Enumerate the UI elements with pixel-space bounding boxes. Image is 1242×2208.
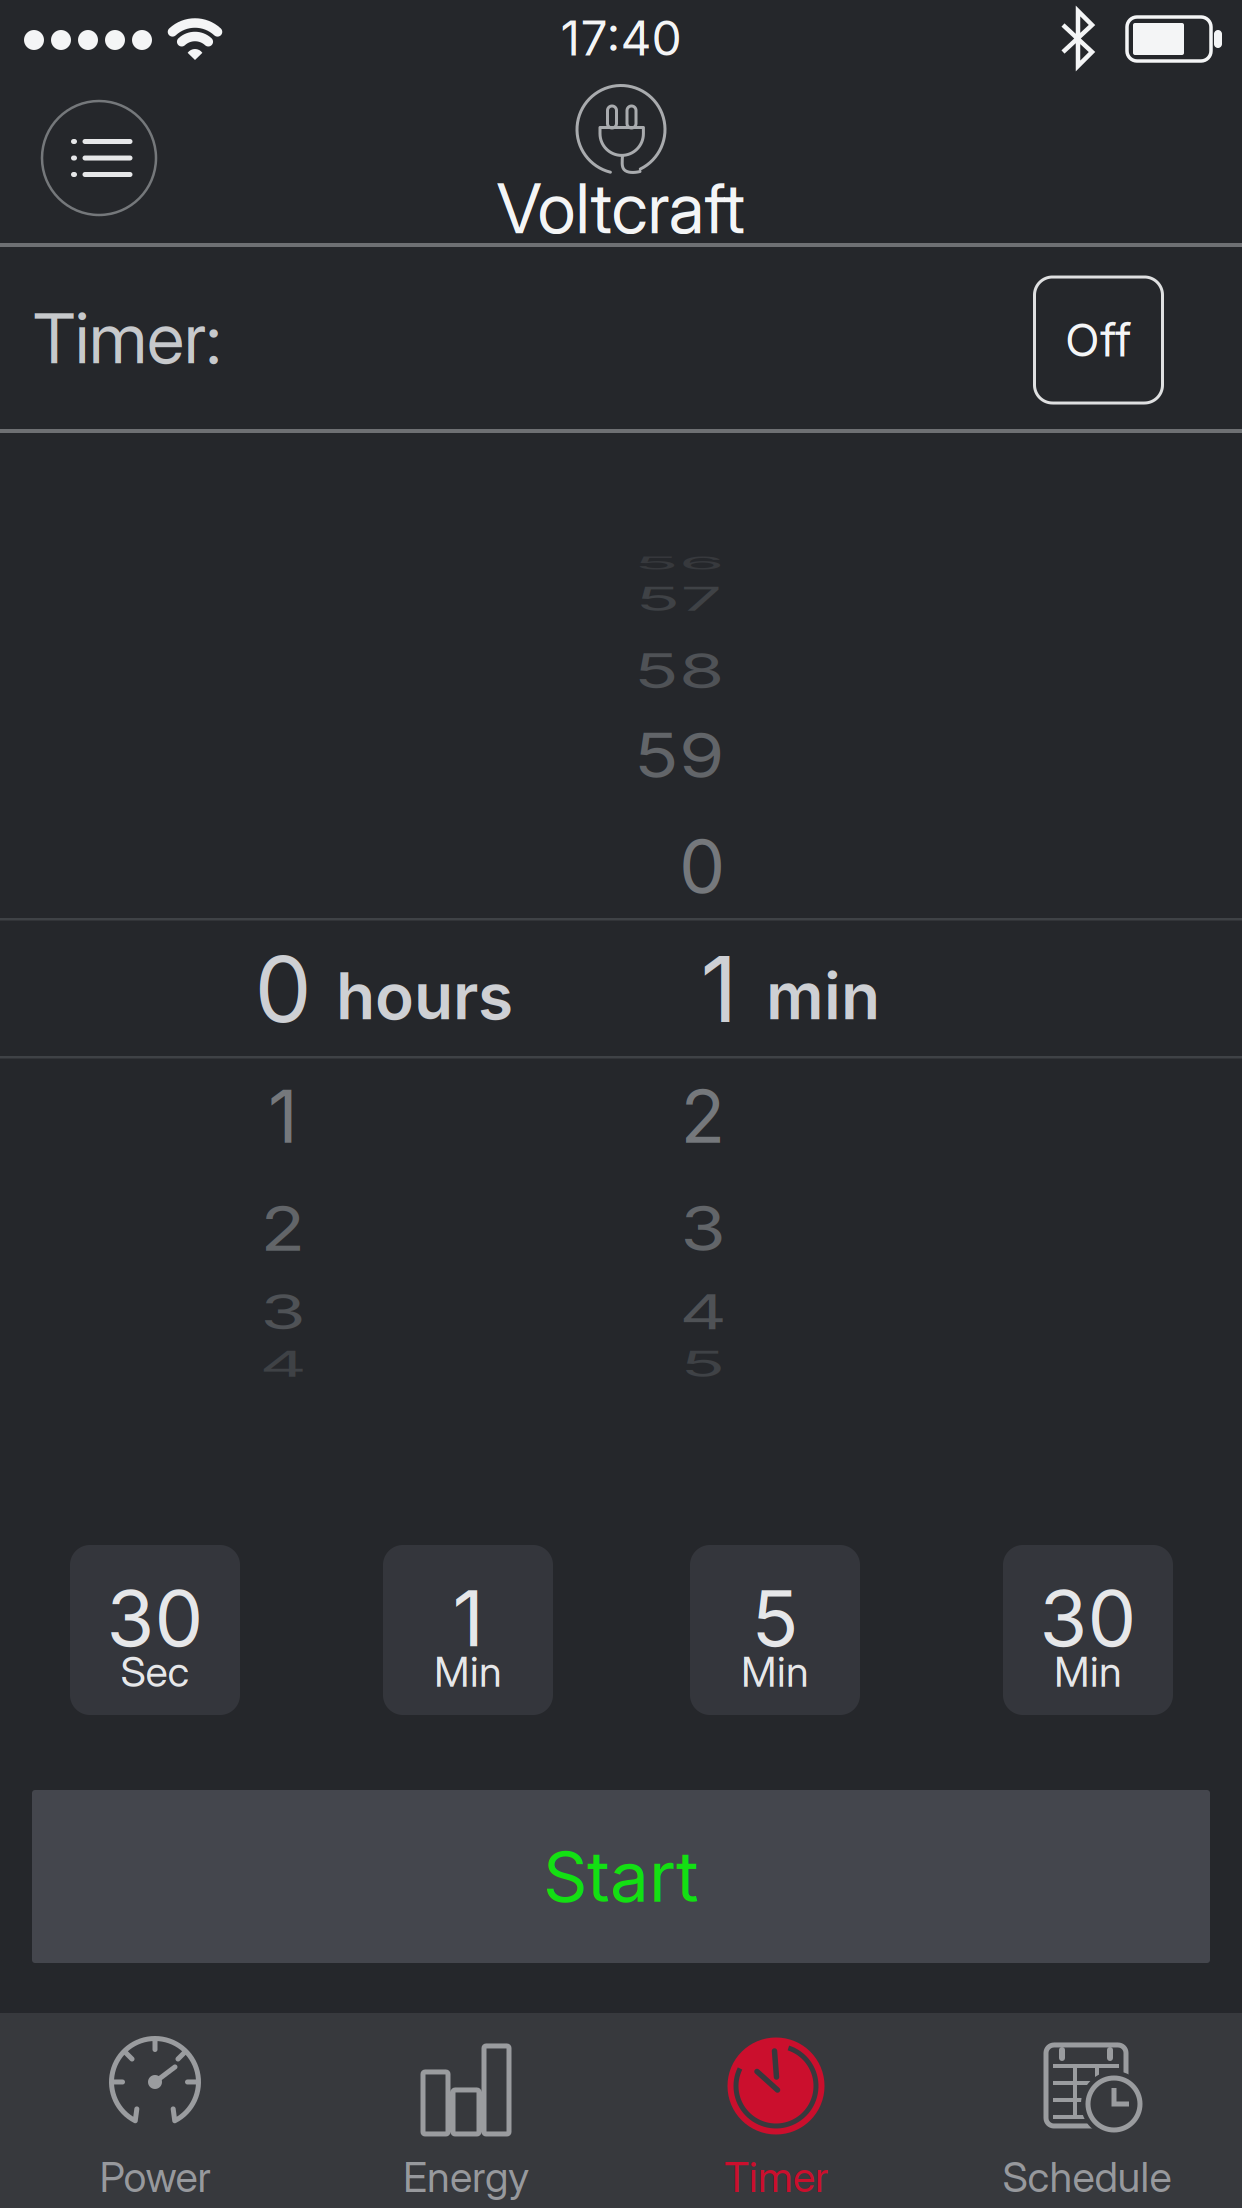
staticText: 3 [680,1184,725,1272]
staticText: Min [434,1647,502,1697]
button[interactable]: Schedule [937,2021,1237,2208]
staticText: 4 [679,1268,726,1356]
button[interactable]: Start [32,1790,1210,1963]
button[interactable]: Energy [316,2021,616,2208]
staticText: 17:40 [560,9,681,67]
staticText: Timer [724,2152,828,2202]
staticText: Min [1054,1647,1122,1697]
staticText: Energy [403,2152,529,2202]
staticText: 30 [106,1571,203,1665]
staticText: Start [543,1835,699,1918]
staticText: 1 [452,1571,483,1665]
staticText: 5 [680,1320,725,1408]
staticText: 1 [700,934,737,1044]
staticText: Min [741,1647,809,1697]
staticText: 2 [260,1184,305,1272]
staticText: Power [99,2152,210,2202]
button[interactable]: 1 [383,1545,553,1715]
staticText: min [766,957,880,1035]
staticText: 2 [680,1072,725,1160]
button[interactable]: Off [1034,277,1162,403]
staticText: 5 [751,1571,798,1665]
staticText: 0 [679,822,725,910]
button[interactable]: 5 [690,1545,860,1715]
staticText: Schedule [1002,2152,1171,2202]
staticText: 4 [259,1320,306,1408]
button[interactable]: Menu [42,101,156,215]
button[interactable]: Timer [626,2021,926,2208]
staticText: 1 [268,1072,298,1160]
staticText: 0 [254,934,311,1044]
staticText: 57 [635,555,722,643]
staticText: 56 [634,519,724,607]
button[interactable]: Power [5,2021,305,2208]
staticText: Timer: [33,296,221,380]
staticText: Voltcraft [496,166,745,250]
staticText: Sec [120,1647,189,1697]
staticText: Off [1065,313,1132,367]
button[interactable]: 30 [70,1545,240,1715]
staticText: 58 [634,627,724,715]
staticText: 30 [1039,1571,1136,1665]
staticText: 59 [634,711,724,799]
staticText: 3 [260,1268,305,1356]
staticText: hours [336,957,513,1035]
button[interactable]: 30 [1003,1545,1173,1715]
